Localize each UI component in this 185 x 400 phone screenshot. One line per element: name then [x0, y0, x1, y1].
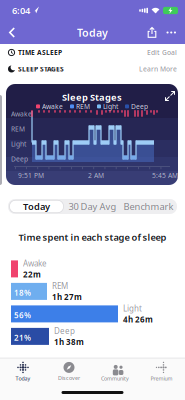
button[interactable] [0, 22, 15, 43]
staticText: Benchmark [123, 200, 173, 213]
button[interactable] [161, 87, 179, 105]
button[interactable]: TIME ASLEEP [0, 44, 185, 61]
staticText: Today [77, 25, 108, 40]
staticText: Deep [131, 102, 148, 111]
staticText: Today [23, 200, 50, 213]
button[interactable]: Today [0, 361, 46, 382]
button[interactable] [143, 22, 160, 43]
staticText: 56% [14, 310, 31, 320]
staticText: Premium [150, 375, 172, 382]
staticText: REM [76, 102, 90, 111]
staticText: Deep [11, 154, 28, 163]
staticText: SLEEP STAGES [18, 65, 64, 73]
button[interactable]: Benchmark [120, 199, 176, 214]
staticText: Learn More [139, 65, 177, 73]
staticText: 5:45 AM [152, 171, 178, 180]
staticText: 30 Day Avg [68, 200, 116, 213]
staticText: REM [52, 280, 68, 291]
staticText: TIME ASLEEP [18, 48, 62, 57]
staticText: Awake [23, 258, 47, 269]
staticText: Light [103, 102, 118, 111]
button[interactable]: 30 Day Avg [64, 199, 120, 214]
staticText: Time spent in each stage of sleep [18, 231, 166, 243]
staticText: Community [101, 375, 129, 382]
staticText: 2 AM [88, 171, 104, 180]
staticText: 9:51 PM [18, 171, 44, 180]
staticText: Light [11, 139, 26, 148]
staticText: Edit Goal [147, 48, 177, 57]
staticText: Awake [42, 102, 63, 111]
button[interactable]: SLEEP STAGES [0, 61, 185, 77]
staticText: Deep [54, 325, 75, 336]
staticText: 21% [14, 332, 31, 343]
staticText: 1h 27m [52, 292, 82, 302]
staticText: Light [123, 303, 142, 314]
staticText: Today [15, 375, 30, 382]
staticText: 1h 38m [54, 337, 84, 347]
staticText: 18% [14, 287, 31, 298]
staticText: Sleep Stages [62, 91, 122, 103]
button[interactable]: Discover [46, 362, 92, 381]
button[interactable]: Community [92, 361, 138, 382]
button[interactable] [160, 23, 185, 41]
staticText: REM [11, 124, 25, 133]
button[interactable]: Premium [138, 361, 185, 382]
staticText: 4h 26m [123, 314, 153, 325]
staticText: 6:04 [12, 4, 30, 17]
button[interactable]: Today [8, 199, 64, 214]
staticText: Awake [11, 109, 32, 118]
staticText: Discover [58, 374, 80, 381]
staticText: 22m [23, 269, 41, 280]
